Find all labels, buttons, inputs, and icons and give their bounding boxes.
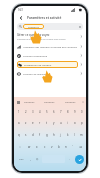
staticText: 0	[81, 110, 83, 114]
button[interactable]: j	[57, 129, 64, 141]
button[interactable]: Contenu de marque	[14, 69, 86, 78]
button[interactable]: ?123	[15, 154, 27, 164]
staticText: contenus	[28, 25, 39, 28]
staticText: 6	[53, 110, 55, 114]
staticText: m	[80, 133, 83, 137]
staticText: g	[46, 133, 48, 137]
staticText: ,	[30, 157, 31, 161]
button[interactable]: 8	[64, 106, 71, 117]
button[interactable]: u	[57, 117, 64, 129]
staticText: q	[18, 133, 20, 137]
staticText: v	[51, 145, 53, 149]
button[interactable]: z	[22, 117, 29, 129]
staticText: Utilisation des données et qualité des c…	[23, 45, 80, 48]
button[interactable]: 7	[57, 106, 64, 117]
button[interactable]: contenus	[65, 100, 76, 103]
button[interactable]: f	[36, 129, 43, 141]
staticText: i	[67, 121, 68, 125]
button[interactable]: b	[55, 141, 62, 153]
button[interactable]: ⌫	[76, 141, 85, 153]
button[interactable]: 3	[29, 106, 36, 117]
staticText: 9	[74, 110, 76, 114]
staticText: x	[36, 145, 38, 149]
staticText: e	[32, 121, 34, 125]
button[interactable]: q	[15, 129, 22, 141]
button[interactable]: contenus	[24, 100, 35, 103]
button[interactable]: e	[29, 117, 36, 129]
button[interactable]: g	[43, 129, 50, 141]
button[interactable]: More	[81, 100, 84, 103]
button[interactable]: 0	[78, 106, 85, 117]
button[interactable]: t	[43, 117, 50, 129]
staticText: ☺	[36, 158, 39, 161]
staticText: t	[46, 121, 48, 125]
button[interactable]: k	[64, 129, 71, 141]
button[interactable]: 1	[15, 106, 22, 117]
button[interactable]: d	[29, 129, 36, 141]
staticText: 3	[32, 110, 34, 114]
button[interactable]: .	[66, 154, 73, 164]
button[interactable]: 9	[71, 106, 78, 117]
button[interactable]: Gérer ce que vous voyez	[14, 31, 86, 42]
button[interactable]: '	[69, 141, 76, 153]
staticText: a	[18, 121, 20, 125]
button[interactable]: ,	[27, 154, 34, 164]
button[interactable]: o	[71, 117, 78, 129]
staticText: z	[25, 121, 27, 125]
staticText: Paramètres et activité	[27, 16, 62, 20]
staticText: contenus	[65, 100, 76, 103]
staticText: ⇧	[19, 146, 21, 149]
button[interactable]: s	[22, 129, 29, 141]
button[interactable]: h	[50, 129, 57, 141]
button[interactable]: Keyboard menu	[16, 100, 20, 104]
button[interactable]: ⇧	[15, 141, 25, 153]
button[interactable]: Back	[17, 14, 24, 21]
staticText: k	[67, 133, 69, 137]
button[interactable]: Enter	[75, 155, 84, 164]
staticText: contenus	[24, 100, 35, 103]
button[interactable]: Préférences de contenu	[14, 60, 86, 69]
staticText: p	[81, 121, 83, 125]
button[interactable]: r	[36, 117, 43, 129]
staticText: contenus	[44, 100, 55, 103]
button[interactable]: w	[25, 141, 33, 153]
button[interactable]: l	[71, 129, 78, 141]
button[interactable]: Contenu programmé	[14, 51, 86, 60]
staticText: d	[32, 133, 34, 137]
button[interactable]: ☺	[34, 154, 41, 164]
button[interactable]: 4	[36, 106, 43, 117]
staticText: w	[28, 145, 31, 149]
staticText: j	[60, 133, 61, 137]
button[interactable]: contenus	[44, 100, 55, 103]
staticText: ⌫	[79, 146, 83, 149]
staticText: Contenu programmé	[23, 54, 48, 57]
staticText: l	[74, 133, 75, 137]
staticText: 9:41	[18, 8, 23, 11]
button[interactable]: contenus	[17, 23, 83, 30]
button[interactable]: 2	[22, 106, 29, 117]
button[interactable]: 6	[50, 106, 57, 117]
staticText: 4	[39, 110, 41, 114]
staticText: ?123	[19, 158, 24, 161]
staticText: o	[74, 121, 76, 125]
staticText: f	[39, 133, 40, 137]
button[interactable]: a	[15, 117, 22, 129]
staticText: '	[72, 145, 73, 149]
button[interactable]: 5	[43, 106, 50, 117]
staticText: Gérer ce que vous voyez	[17, 33, 50, 37]
staticText: s	[25, 133, 27, 137]
button[interactable]: c	[41, 141, 48, 153]
button[interactable]: y	[50, 117, 57, 129]
button[interactable]: v	[48, 141, 55, 153]
button[interactable]: i	[64, 117, 71, 129]
button[interactable]: m	[78, 129, 85, 141]
button[interactable]: p	[78, 117, 85, 129]
staticText: r	[39, 121, 41, 125]
staticText: n	[65, 145, 67, 149]
button[interactable]: n	[62, 141, 69, 153]
button[interactable]: x	[33, 141, 41, 153]
staticText: 5	[46, 110, 48, 114]
staticText: 8	[67, 110, 69, 114]
button[interactable]: Utilisation des données et qualité des c…	[14, 42, 86, 51]
